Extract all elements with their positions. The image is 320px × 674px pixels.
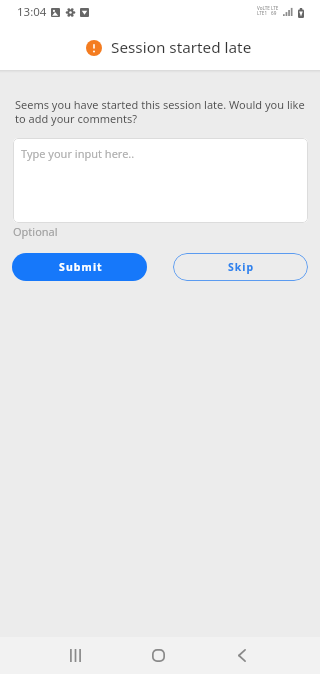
staticText: 13:04 xyxy=(17,4,47,20)
button[interactable]: Back xyxy=(220,642,264,669)
button[interactable]: Skip xyxy=(173,253,308,281)
staticText: Optional xyxy=(13,224,58,239)
button[interactable]: Recent apps xyxy=(53,642,97,669)
button[interactable]: Submit xyxy=(12,253,147,281)
staticText: Session started late xyxy=(111,37,252,58)
staticText: 69 xyxy=(271,10,277,16)
button[interactable]: Home xyxy=(136,642,180,669)
staticText: Skip xyxy=(228,260,255,274)
staticText: LTE xyxy=(271,5,279,11)
button[interactable]: Type your input here.. xyxy=(13,138,308,223)
staticText: VoLTE xyxy=(257,5,270,11)
staticText: LTE1 xyxy=(257,10,268,16)
staticText: Seems you have started this session late… xyxy=(15,97,305,126)
staticText: Submit xyxy=(59,260,103,274)
staticText: Type your input here.. xyxy=(21,146,135,161)
